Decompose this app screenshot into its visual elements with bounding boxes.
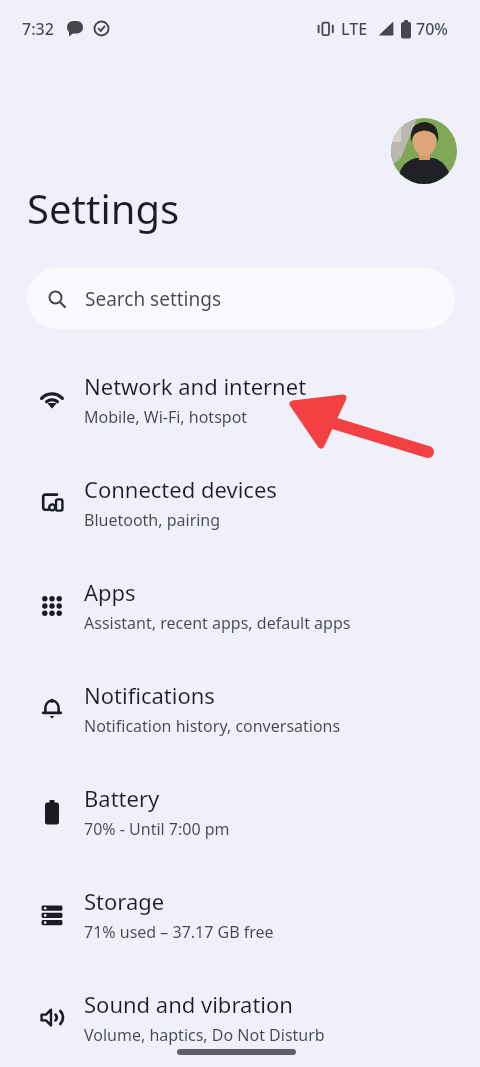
staticText: 71% used – 37.17 GB free [84, 921, 274, 943]
staticText: Settings [27, 181, 180, 235]
staticText: Bluetooth, pairing [84, 509, 221, 531]
staticText: Network and internet [84, 371, 307, 401]
staticText: 7:32 [22, 18, 54, 40]
button[interactable] [391, 118, 457, 184]
staticText: Connected devices [84, 474, 277, 504]
staticText: Apps [84, 577, 136, 607]
button[interactable]: Sound and vibration [0, 966, 480, 1067]
button[interactable]: Notifications [0, 657, 480, 760]
staticText: Notification history, conversations [84, 715, 341, 737]
staticText: Battery [84, 783, 160, 813]
staticText: LTE [341, 18, 368, 40]
button[interactable]: Search settings [27, 268, 455, 329]
staticText: Storage [84, 886, 165, 916]
button[interactable]: Battery [0, 760, 480, 863]
staticText: Notifications [84, 680, 215, 710]
staticText: Mobile, Wi-Fi, hotspot [84, 406, 248, 428]
staticText: Volume, haptics, Do Not Disturb [84, 1024, 325, 1046]
staticText: 70% - Until 7:00 pm [84, 818, 230, 840]
staticText: Sound and vibration [84, 989, 293, 1019]
staticText: Search settings [85, 286, 222, 312]
button[interactable]: Network and internet [0, 348, 480, 451]
button[interactable]: Storage [0, 863, 480, 966]
staticText: 70% [416, 18, 448, 40]
staticText: Assistant, recent apps, default apps [84, 612, 351, 634]
button[interactable]: Connected devices [0, 451, 480, 554]
button[interactable]: Apps [0, 554, 480, 657]
